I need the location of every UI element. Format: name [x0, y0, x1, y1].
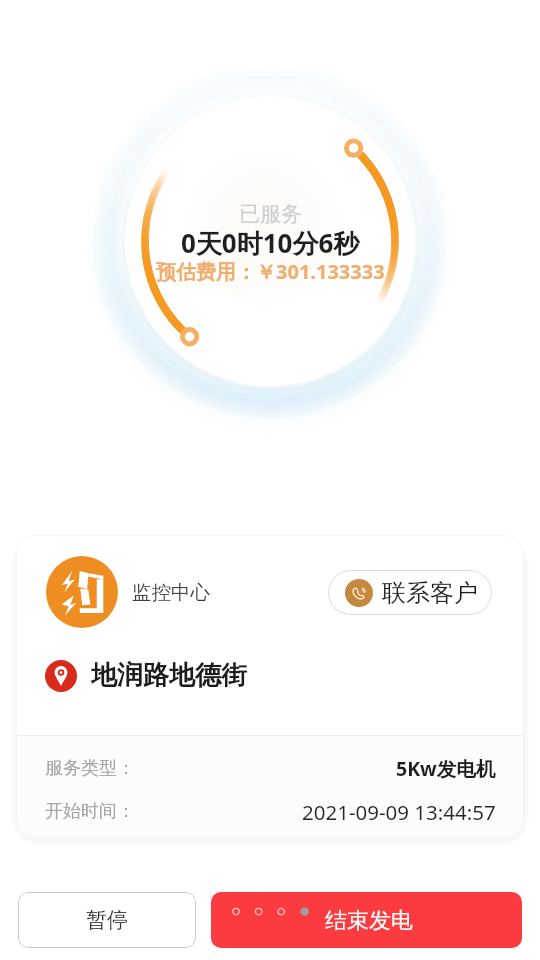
- staticText: 地润路地德街: [91, 659, 247, 692]
- staticText: 预估费用：￥301.133333: [156, 258, 385, 285]
- staticText: 0天0时10分6秒: [181, 225, 360, 261]
- staticText: 联系客户: [382, 578, 478, 608]
- staticText: 暂停: [86, 907, 128, 933]
- button[interactable]: 暂停: [18, 892, 196, 948]
- button[interactable]: 联系客户: [328, 570, 492, 615]
- staticText: 开始时间：: [45, 800, 135, 823]
- staticText: 结束发电: [325, 907, 413, 935]
- staticText: 5Kw发电机: [396, 755, 496, 782]
- staticText: 服务类型：: [45, 757, 135, 780]
- staticText: 监控中心: [132, 580, 210, 605]
- button[interactable]: 监控中心: [39, 548, 279, 636]
- button[interactable]: 结束发电: [211, 892, 522, 948]
- staticText: 2021-09-09 13:44:57: [302, 798, 496, 826]
- button[interactable]: 地润路地德街: [16, 648, 524, 704]
- staticText: 已服务: [239, 201, 302, 227]
